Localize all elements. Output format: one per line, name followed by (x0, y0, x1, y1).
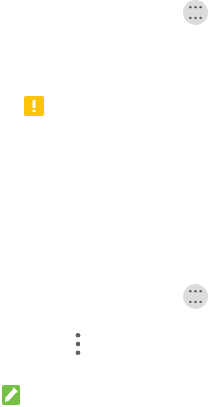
button[interactable]: More options (70, 331, 86, 357)
button[interactable]: Warning (24, 96, 44, 116)
button[interactable]: More apps (183, 0, 208, 25)
button[interactable]: More apps (183, 284, 208, 309)
button[interactable]: Edit (2, 385, 20, 405)
